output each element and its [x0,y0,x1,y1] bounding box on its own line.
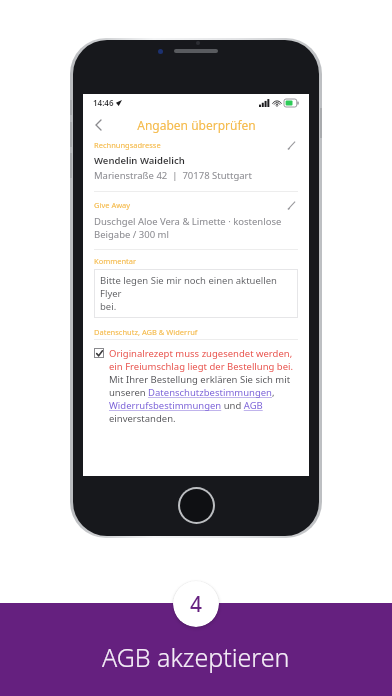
staticText: Rechnungsadresse [94,140,161,150]
staticText: Give Away [94,200,131,210]
staticText: 14:46 [93,97,114,108]
staticText: Duschgel Aloe Vera & Limette · kostenlos… [94,215,282,241]
staticText: Bitte legen Sie mir noch einen aktuellen… [100,274,292,313]
button[interactable]: Bearbeiten [284,138,298,152]
staticText: Angaben überprüfen [137,117,256,133]
staticText: Originalrezept muss zugesendet werden, e… [109,347,298,425]
staticText: 4 [190,590,203,619]
button[interactable]: Bearbeiten [284,198,298,212]
staticText: Kommentar [94,256,137,266]
button[interactable]: Originalrezept muss zugesendet werden, e… [94,347,298,425]
staticText: Marienstraße 42 | 70178 Stuttgart [94,169,252,182]
staticText: AGB akzeptieren [102,640,290,674]
staticText: Wendelin Waidelich [94,154,185,167]
staticText: Datenschutz, AGB & Widerruf [94,327,198,337]
button[interactable]: Zurück [89,116,107,134]
